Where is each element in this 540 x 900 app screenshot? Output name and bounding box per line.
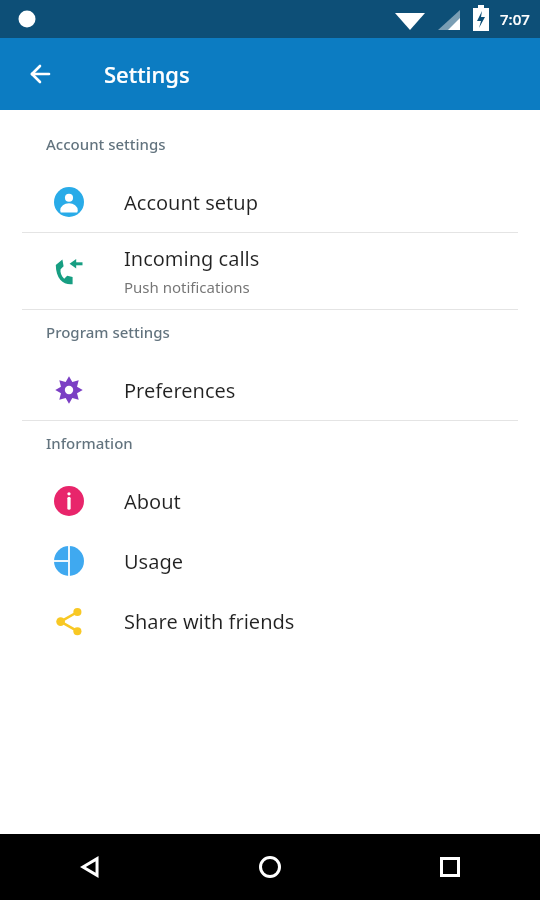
button[interactable]: Recent apps: [360, 834, 540, 900]
staticText: Preferences: [124, 377, 236, 404]
staticText: Push notifications: [124, 277, 250, 297]
button[interactable]: Home: [180, 834, 360, 900]
button[interactable]: About: [0, 471, 540, 531]
button[interactable]: Incoming calls: [0, 233, 540, 309]
button[interactable]: Share with friends: [0, 591, 540, 651]
staticText: Incoming calls: [124, 245, 260, 272]
button[interactable]: Back: [0, 834, 180, 900]
staticText: About: [124, 488, 181, 515]
button[interactable]: Account setup: [0, 172, 540, 232]
staticText: Account settings: [46, 134, 166, 154]
staticText: Account setup: [124, 189, 258, 216]
staticText: 7:07: [500, 9, 530, 29]
staticText: Program settings: [46, 322, 170, 342]
button[interactable]: Usage: [0, 531, 540, 591]
staticText: Settings: [104, 59, 190, 89]
button[interactable]: Preferences: [0, 360, 540, 420]
staticText: Information: [46, 433, 133, 453]
staticText: Usage: [124, 548, 183, 575]
staticText: Share with friends: [124, 608, 295, 635]
button[interactable]: Back: [16, 50, 64, 98]
